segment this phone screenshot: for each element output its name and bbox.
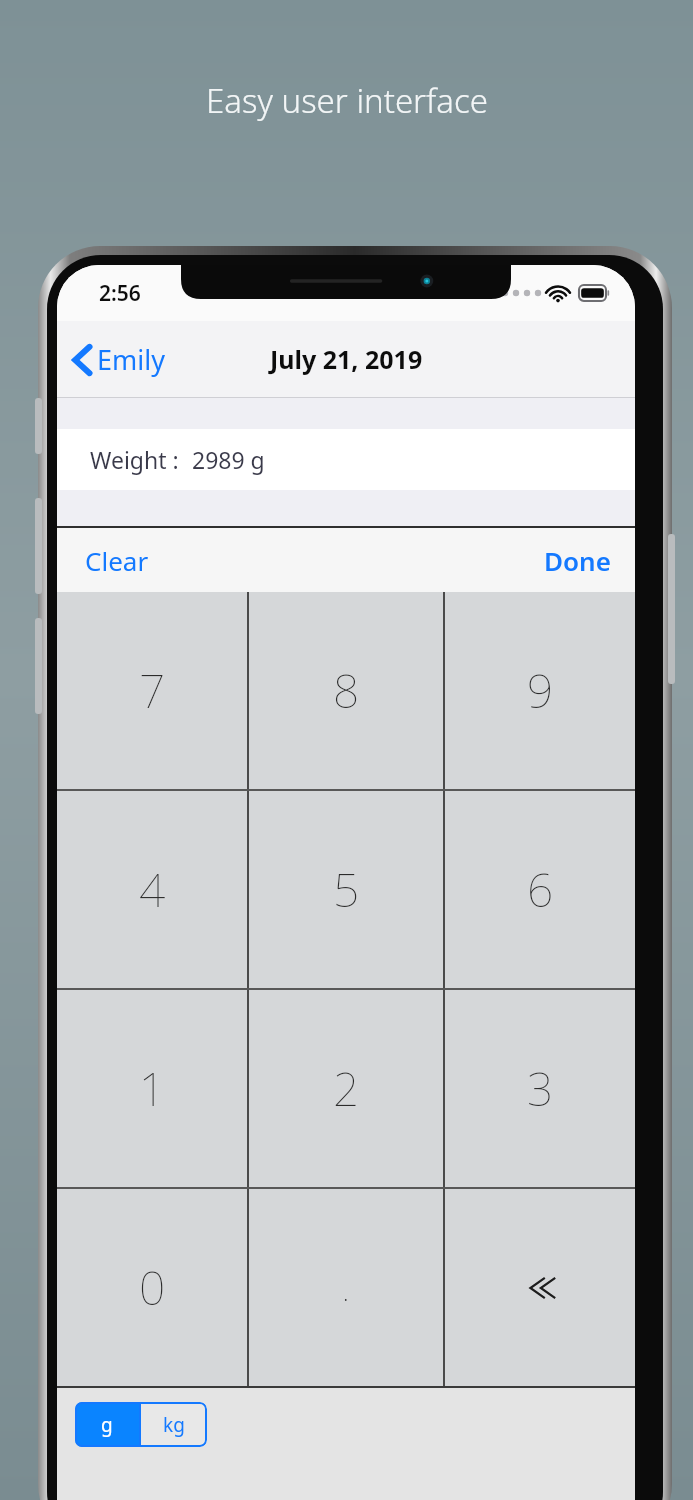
button[interactable]: 4: [57, 791, 247, 988]
button[interactable]: 7: [57, 592, 247, 789]
staticText: July 21, 2019: [270, 342, 423, 376]
staticText: 2: [333, 1057, 360, 1120]
button[interactable]: Clear: [57, 533, 177, 588]
button[interactable]: 3: [445, 990, 635, 1187]
staticText: 2989 g: [192, 444, 265, 475]
staticText: 3: [527, 1057, 554, 1120]
button[interactable]: g: [75, 1402, 139, 1447]
staticText: Weight :: [90, 444, 179, 475]
staticText: 9: [527, 659, 554, 722]
staticText: 6: [527, 858, 554, 921]
button[interactable]: 5: [249, 791, 443, 988]
staticText: Emily: [97, 341, 165, 378]
button[interactable]: 9: [445, 592, 635, 789]
staticText: .: [342, 1265, 350, 1311]
staticText: 4: [139, 858, 166, 921]
button[interactable]: Emily: [57, 333, 177, 386]
button[interactable]: Done: [520, 533, 635, 588]
staticText: Easy user interface: [206, 78, 488, 123]
button[interactable]: Weight :: [57, 429, 635, 490]
staticText: kg: [163, 1412, 185, 1438]
button[interactable]: Backspace: [445, 1189, 635, 1386]
staticText: 1: [139, 1057, 166, 1120]
button[interactable]: 2: [249, 990, 443, 1187]
button[interactable]: 8: [249, 592, 443, 789]
staticText: 7: [139, 659, 166, 722]
button[interactable]: 0: [57, 1189, 247, 1386]
staticText: Done: [544, 543, 611, 578]
staticText: g: [101, 1412, 113, 1438]
staticText: 8: [333, 659, 360, 722]
staticText: 5: [333, 858, 360, 921]
staticText: 2:56: [99, 279, 141, 308]
button[interactable]: 1: [57, 990, 247, 1187]
button[interactable]: kg: [141, 1402, 207, 1447]
button[interactable]: 6: [445, 791, 635, 988]
staticText: Clear: [85, 543, 149, 578]
staticText: 0: [139, 1256, 166, 1319]
